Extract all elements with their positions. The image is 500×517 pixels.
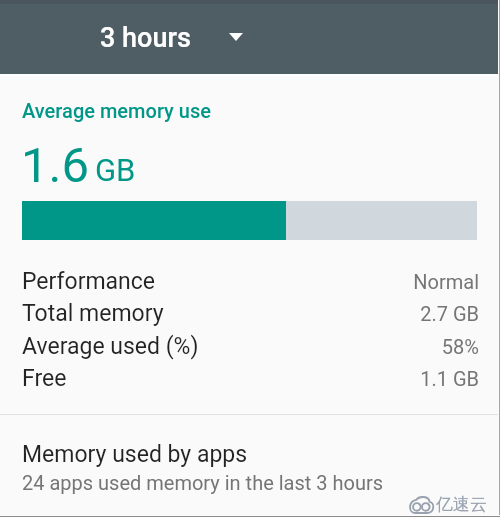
- button[interactable]: Total memory: [0, 297, 500, 329]
- staticText: 2.7 GB: [164, 302, 479, 325]
- button[interactable]: Free: [0, 362, 500, 394]
- staticText: Total memory: [22, 300, 164, 327]
- staticText: 3 hours: [100, 22, 191, 54]
- staticText: Normal: [156, 270, 479, 293]
- button[interactable]: Memory used by apps: [0, 431, 500, 508]
- staticText: Memory used by apps: [22, 441, 248, 468]
- staticText: Performance: [22, 268, 156, 295]
- staticText: 24 apps used memory in the last 3 hours: [22, 471, 384, 494]
- button[interactable]: Performance: [0, 265, 500, 297]
- staticText: GB: [95, 152, 136, 188]
- staticText: 亿速云: [436, 494, 487, 515]
- staticText: 58%: [199, 335, 479, 358]
- button[interactable]: Average used (%): [0, 330, 500, 362]
- staticText: Average used (%): [22, 333, 199, 360]
- staticText: 1.1 GB: [67, 367, 479, 390]
- staticText: Free: [22, 365, 67, 392]
- staticText: Average memory use: [22, 99, 211, 122]
- staticText: 1.6: [21, 137, 89, 194]
- button[interactable]: 3 hours: [86, 16, 257, 60]
